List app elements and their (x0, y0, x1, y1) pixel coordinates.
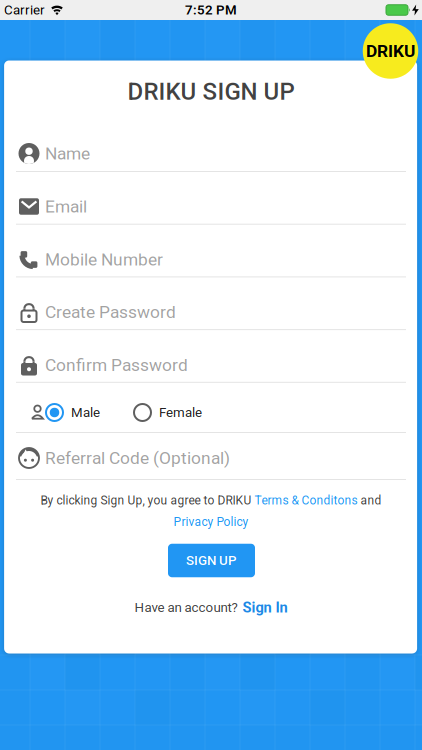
staticText: DRIKU SIGN UP (127, 78, 294, 105)
staticText: Create Password (45, 302, 176, 322)
button[interactable]: DRIKU (363, 23, 418, 79)
button[interactable]: SIGN UP (168, 544, 255, 577)
button[interactable]: Sign In (242, 599, 287, 616)
button[interactable]: Mobile Number (0, 237, 422, 281)
staticText: DRIKU (366, 41, 415, 61)
staticText: Carrier (4, 2, 45, 18)
button[interactable]: Email (0, 184, 422, 228)
button[interactable]: Privacy Policy (173, 512, 248, 532)
staticText: Referral Code (Optional) (45, 448, 230, 468)
staticText: Have an account? (134, 600, 237, 615)
staticText: 7:52 PM (185, 2, 237, 18)
button[interactable]: Referral Code (Optional) (0, 436, 422, 480)
staticText: and (357, 494, 381, 507)
staticText: Terms & Conditons (254, 494, 357, 507)
button[interactable]: Confirm Password (0, 343, 422, 387)
staticText: By clicking Sign Up, you agree to DRIKU (40, 494, 254, 507)
staticText: Sign In (242, 599, 287, 616)
staticText: Female (159, 405, 202, 420)
button[interactable]: Male (45, 394, 115, 430)
staticText: Mobile Number (45, 250, 163, 269)
staticText: SIGN UP (186, 553, 237, 568)
staticText: Email (45, 197, 87, 216)
button[interactable]: Terms & Conditons (254, 494, 357, 507)
button[interactable]: Name (0, 131, 422, 175)
staticText: Confirm Password (45, 355, 188, 375)
staticText: Name (45, 144, 90, 163)
button[interactable]: Create Password (0, 290, 422, 334)
staticText: Privacy Policy (173, 515, 248, 529)
button[interactable]: Female (133, 394, 223, 430)
staticText: Male (71, 405, 100, 420)
